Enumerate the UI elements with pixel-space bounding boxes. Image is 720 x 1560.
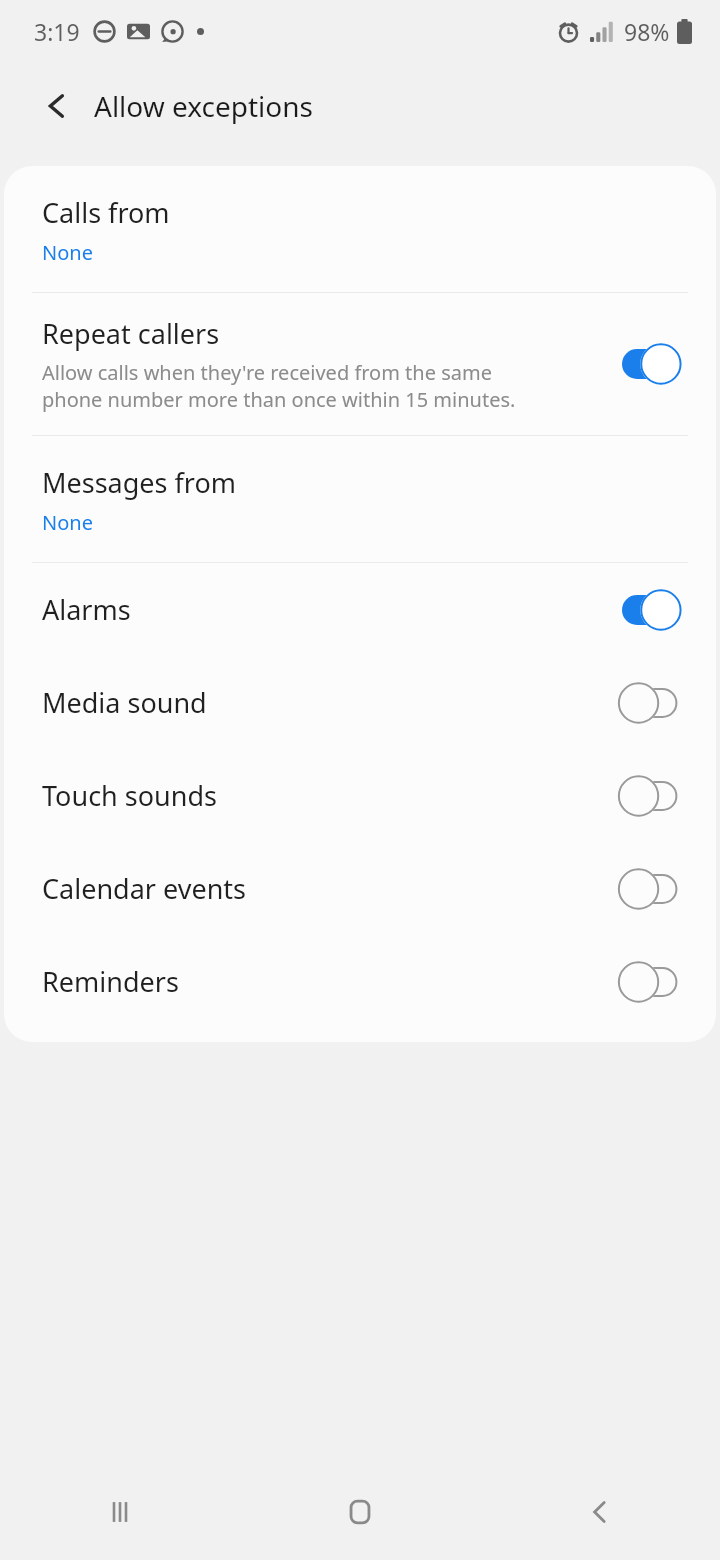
staticText: 98%: [624, 16, 670, 47]
button[interactable]: Repeat callers: [4, 293, 716, 435]
staticText: Allow exceptions: [94, 87, 313, 125]
staticText: Calendar events: [42, 870, 622, 907]
button[interactable]: Back: [22, 71, 92, 141]
staticText: Allow calls when they're received from t…: [42, 359, 516, 413]
button[interactable]: Touch sounds: [4, 749, 716, 842]
button[interactable]: Calendar events: [4, 842, 716, 935]
staticText: Touch sounds: [42, 777, 622, 814]
button[interactable]: Reminders: [4, 935, 716, 1028]
button[interactable]: Media sound: [4, 656, 716, 749]
button[interactable]: Back: [480, 1464, 720, 1560]
button[interactable]: Home: [240, 1464, 480, 1560]
staticText: Calls from: [42, 194, 170, 231]
button[interactable]: Alarms: [4, 563, 716, 656]
staticText: Reminders: [42, 963, 622, 1000]
staticText: Repeat callers: [42, 315, 220, 352]
staticText: Messages from: [42, 464, 236, 501]
staticText: 3:19: [34, 16, 80, 47]
staticText: Media sound: [42, 684, 622, 721]
staticText: None: [42, 509, 93, 536]
button[interactable]: Calls from: [4, 166, 716, 292]
staticText: Alarms: [42, 591, 622, 628]
button[interactable]: Messages from: [4, 436, 716, 562]
button[interactable]: Recent apps: [0, 1464, 240, 1560]
staticText: None: [42, 239, 93, 266]
